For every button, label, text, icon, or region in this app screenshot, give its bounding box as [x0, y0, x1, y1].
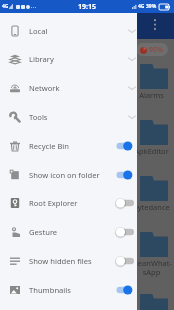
button[interactable]: Local [0, 16, 137, 45]
button[interactable]: Tools [0, 102, 137, 131]
button[interactable] [140, 293, 168, 310]
staticText: 4G [138, 3, 145, 10]
button[interactable]: Thumbnails [0, 275, 137, 304]
button[interactable]: Show hidden files [0, 246, 137, 275]
button[interactable]: More options [146, 12, 164, 30]
button[interactable] [140, 63, 168, 89]
staticText: Recycle Bin [29, 141, 69, 151]
button[interactable] [140, 175, 168, 201]
staticText: 4G [2, 3, 9, 10]
button[interactable]: Gesture [0, 217, 137, 246]
staticText: 19:15 [78, 2, 96, 12]
staticText: Library [29, 54, 54, 64]
staticText: ApkEditor [134, 146, 169, 156]
staticText: Thumbnails [29, 285, 71, 295]
staticText: Root Explorer [29, 198, 78, 208]
button[interactable]: Root Explorer [0, 188, 137, 217]
staticText: Alarms [139, 90, 164, 100]
staticText: Tools [29, 112, 48, 122]
button[interactable]: Library [0, 44, 137, 73]
staticText: CleanWhat- sApp [131, 258, 172, 278]
staticText: Show hidden files [29, 256, 92, 266]
button[interactable] [140, 231, 168, 257]
button[interactable]: Recycle Bin [0, 131, 137, 160]
staticText: Local [29, 26, 48, 36]
button[interactable]: Show icon on folder [0, 160, 137, 189]
staticText: Gesture [29, 227, 58, 237]
button[interactable]: Network [0, 73, 137, 102]
staticText: 95% [149, 45, 163, 55]
button[interactable]: 95% [136, 43, 168, 56]
staticText: bytedance [133, 202, 170, 212]
staticText: Show icon on folder [29, 170, 100, 180]
staticText: 39% [146, 3, 157, 10]
staticText: Network [29, 83, 60, 93]
button[interactable] [140, 119, 168, 145]
